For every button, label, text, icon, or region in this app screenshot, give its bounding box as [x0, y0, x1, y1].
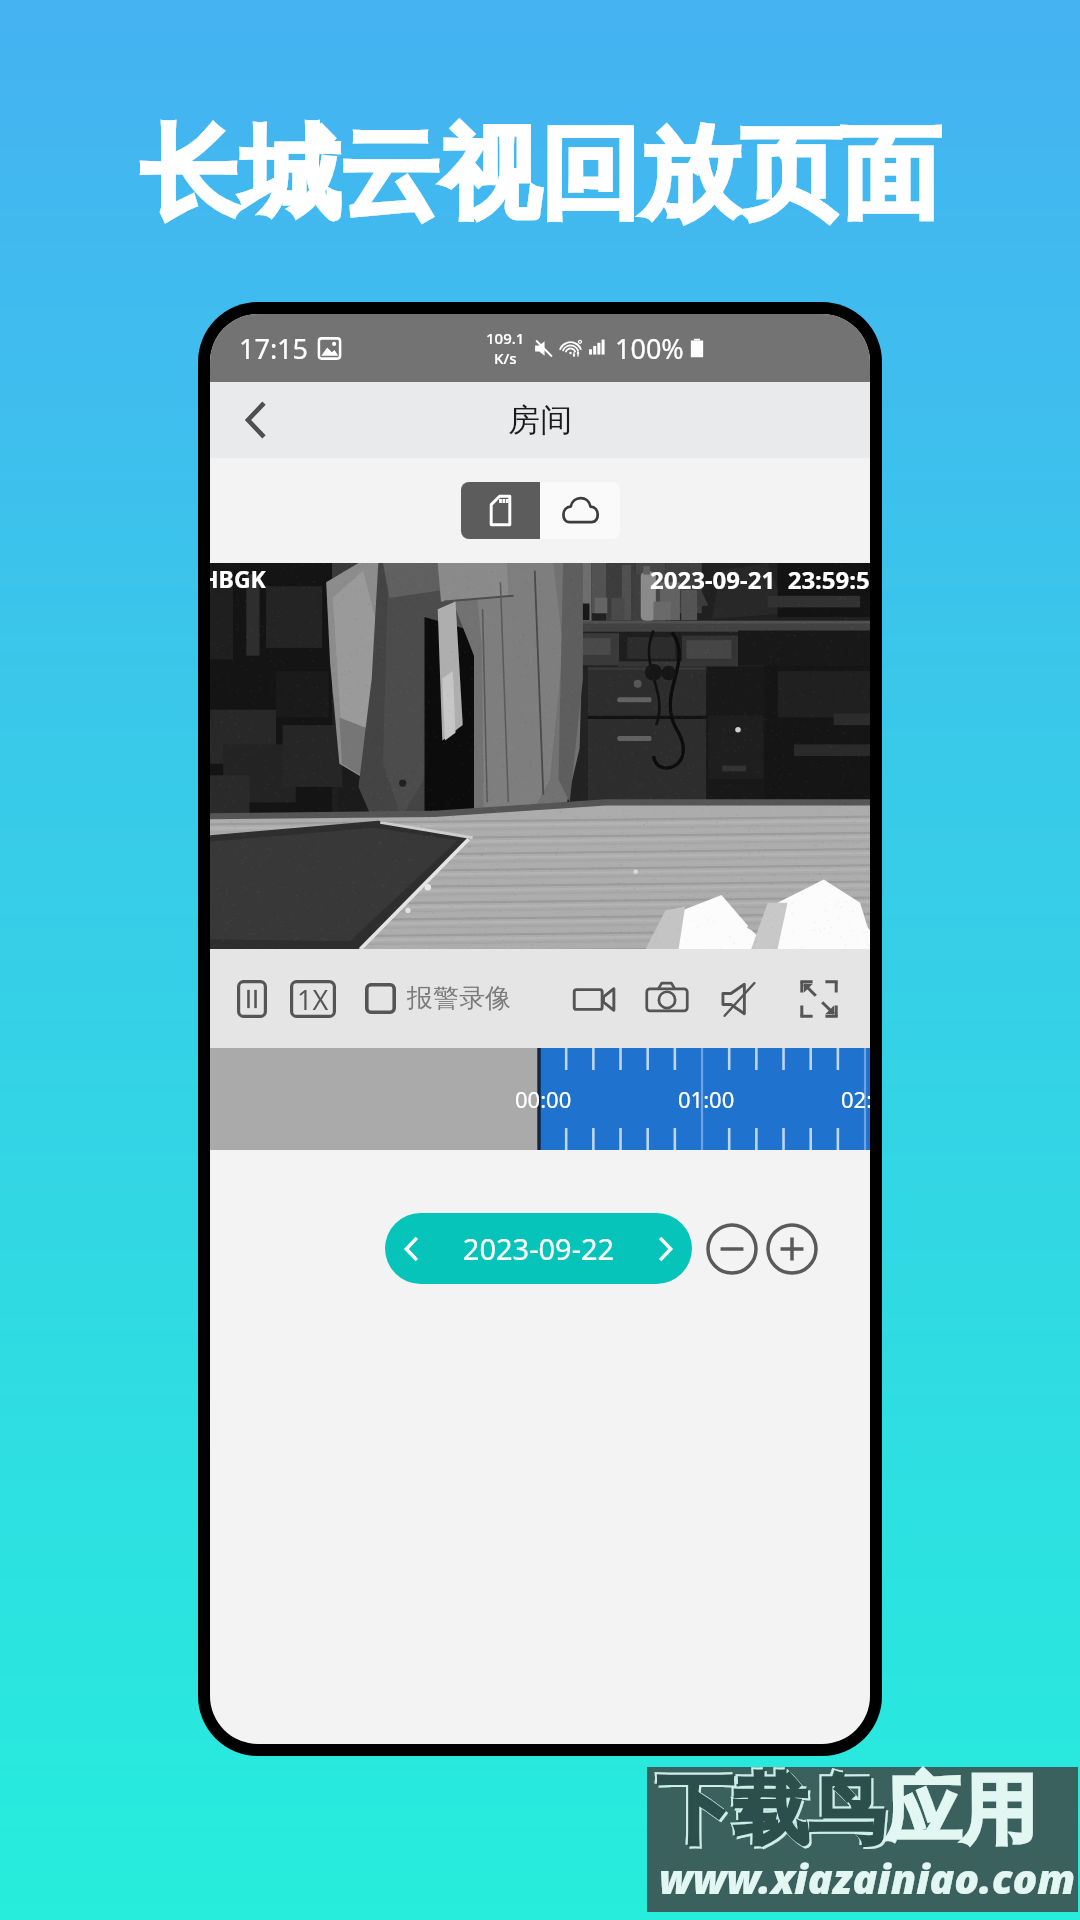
button[interactable]: Fullscreen	[790, 970, 848, 1028]
staticText: 1X	[297, 981, 329, 1018]
staticText: 109.1	[486, 328, 525, 348]
staticText: 房间	[508, 400, 572, 440]
staticText: 2023-09-21 23:59:56	[650, 563, 870, 596]
button[interactable]: Pause	[226, 973, 278, 1025]
button[interactable]: Previous day	[385, 1213, 692, 1284]
button[interactable]: SD card recordings	[461, 482, 540, 539]
button[interactable]: Next day	[640, 1213, 692, 1284]
button[interactable]: 报警录像	[365, 982, 511, 1015]
staticText: 100%	[615, 330, 684, 367]
staticText: 下载鸟	[657, 1763, 885, 1859]
button[interactable]: Record video	[565, 970, 623, 1028]
staticText: 下载鸟	[659, 1765, 887, 1861]
staticText: 2023-09-22	[437, 1229, 640, 1268]
staticText: 应用	[885, 1763, 1037, 1859]
staticText: 01:00	[678, 1084, 735, 1114]
staticText: 17:15	[239, 330, 309, 367]
staticText: 长城云视回放页面	[0, 112, 1080, 238]
staticText: www.xiazainiao.com	[659, 1850, 1076, 1906]
button[interactable]: Take snapshot	[638, 970, 696, 1028]
button[interactable]: Zoom out	[706, 1223, 758, 1275]
staticText: HBGK	[210, 563, 266, 594]
staticText: 报警录像	[407, 982, 511, 1015]
button[interactable]: 1X	[290, 980, 336, 1018]
button[interactable]: Cloud recordings	[540, 482, 620, 539]
staticText: 02:00	[841, 1084, 870, 1114]
staticText: 00:00	[515, 1084, 572, 1114]
button[interactable]: Previous day	[385, 1213, 437, 1284]
button[interactable]: Mute audio	[712, 970, 770, 1028]
button[interactable]: Back	[228, 392, 284, 448]
button[interactable]: Zoom in	[766, 1223, 818, 1275]
staticText: 下载鸟	[655, 1761, 883, 1857]
staticText: K/s	[494, 348, 517, 368]
